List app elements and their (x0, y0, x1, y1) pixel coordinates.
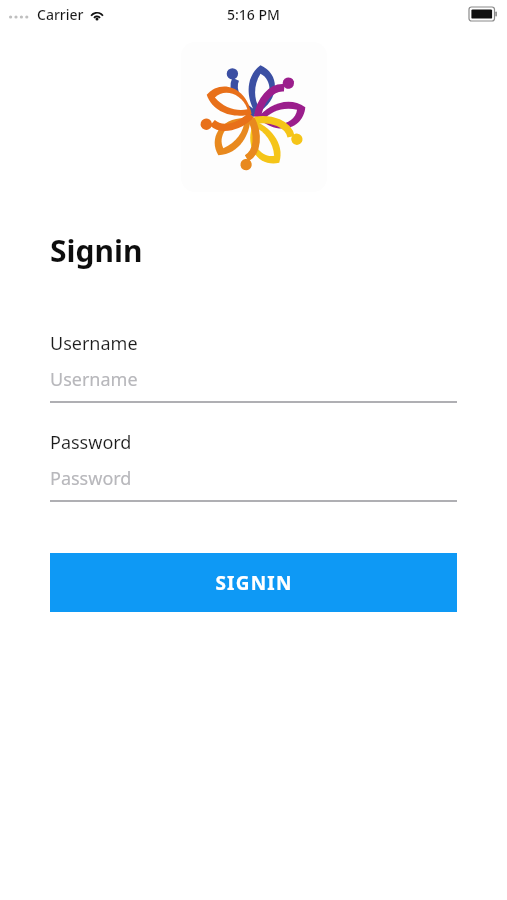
staticText: Password (50, 466, 132, 491)
staticText: Username (50, 331, 138, 356)
other: Battery (469, 7, 497, 21)
button[interactable]: SIGNIN (50, 553, 457, 612)
button[interactable]: Password (50, 466, 457, 502)
staticText: SIGNIN (215, 570, 293, 596)
button[interactable]: Username (50, 367, 457, 403)
staticText: Username (50, 367, 138, 392)
staticText: Signin (50, 230, 143, 271)
staticText: 5:16 PM (227, 5, 280, 24)
button[interactable]: App logo (181, 42, 327, 192)
staticText: Password (50, 430, 132, 455)
staticText: Carrier (37, 5, 84, 24)
